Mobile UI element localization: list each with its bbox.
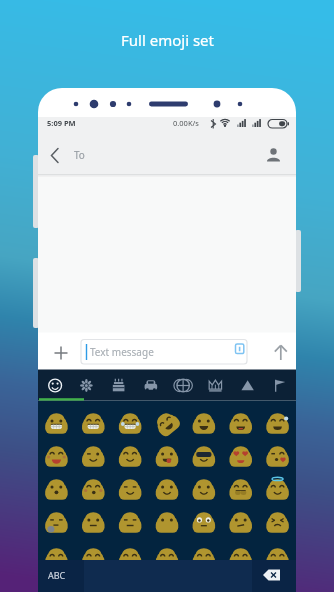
button[interactable] bbox=[134, 370, 166, 401]
button[interactable] bbox=[81, 339, 247, 364]
button[interactable] bbox=[185, 539, 221, 572]
button[interactable] bbox=[268, 342, 292, 364]
button[interactable] bbox=[263, 370, 295, 401]
button[interactable] bbox=[185, 440, 221, 473]
button[interactable] bbox=[102, 370, 134, 401]
staticText: Text message bbox=[90, 345, 154, 359]
button[interactable] bbox=[167, 370, 199, 401]
button[interactable] bbox=[185, 473, 221, 506]
button[interactable] bbox=[38, 506, 74, 539]
button[interactable] bbox=[38, 440, 74, 473]
button[interactable] bbox=[38, 473, 74, 506]
button[interactable] bbox=[148, 473, 184, 506]
button[interactable] bbox=[231, 370, 263, 401]
button[interactable] bbox=[38, 370, 70, 401]
button[interactable] bbox=[259, 473, 295, 506]
button[interactable] bbox=[259, 539, 295, 572]
button[interactable] bbox=[199, 370, 231, 401]
button[interactable] bbox=[185, 407, 221, 440]
button[interactable] bbox=[70, 370, 102, 401]
button[interactable] bbox=[148, 440, 184, 473]
button[interactable] bbox=[222, 539, 258, 572]
button[interactable] bbox=[111, 440, 147, 473]
button[interactable] bbox=[252, 560, 296, 592]
button[interactable] bbox=[259, 407, 295, 440]
staticText: 0.00K/s bbox=[173, 118, 199, 128]
button[interactable] bbox=[74, 539, 110, 572]
button[interactable] bbox=[38, 539, 74, 572]
staticText: ABC bbox=[48, 569, 66, 581]
button[interactable] bbox=[38, 560, 84, 592]
button[interactable] bbox=[148, 407, 184, 440]
button[interactable] bbox=[111, 539, 147, 572]
staticText: Full emoji set bbox=[121, 30, 214, 50]
button[interactable] bbox=[74, 440, 110, 473]
button[interactable] bbox=[74, 473, 110, 506]
button[interactable] bbox=[38, 407, 74, 440]
button[interactable] bbox=[111, 407, 147, 440]
button[interactable] bbox=[185, 506, 221, 539]
button[interactable] bbox=[148, 539, 184, 572]
button[interactable] bbox=[259, 440, 295, 473]
button[interactable] bbox=[222, 407, 258, 440]
button[interactable] bbox=[74, 506, 110, 539]
button[interactable] bbox=[222, 440, 258, 473]
button[interactable] bbox=[264, 144, 284, 162]
button[interactable] bbox=[46, 146, 64, 164]
button[interactable] bbox=[222, 473, 258, 506]
button[interactable] bbox=[222, 506, 258, 539]
button[interactable] bbox=[259, 506, 295, 539]
staticText: To bbox=[74, 148, 85, 162]
button[interactable] bbox=[148, 506, 184, 539]
button[interactable] bbox=[52, 344, 70, 362]
button[interactable] bbox=[111, 473, 147, 506]
button[interactable] bbox=[111, 506, 147, 539]
staticText: 5:09 PM bbox=[47, 118, 76, 128]
button[interactable] bbox=[74, 407, 110, 440]
